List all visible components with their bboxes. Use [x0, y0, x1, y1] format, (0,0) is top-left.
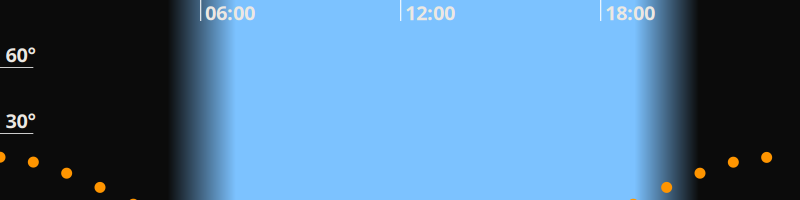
staticText: 60° — [5, 41, 35, 68]
staticText: 18:00 — [605, 0, 655, 26]
staticText: 30° — [5, 107, 35, 134]
staticText: 06:00 — [205, 0, 255, 26]
staticText: 12:00 — [405, 0, 455, 26]
